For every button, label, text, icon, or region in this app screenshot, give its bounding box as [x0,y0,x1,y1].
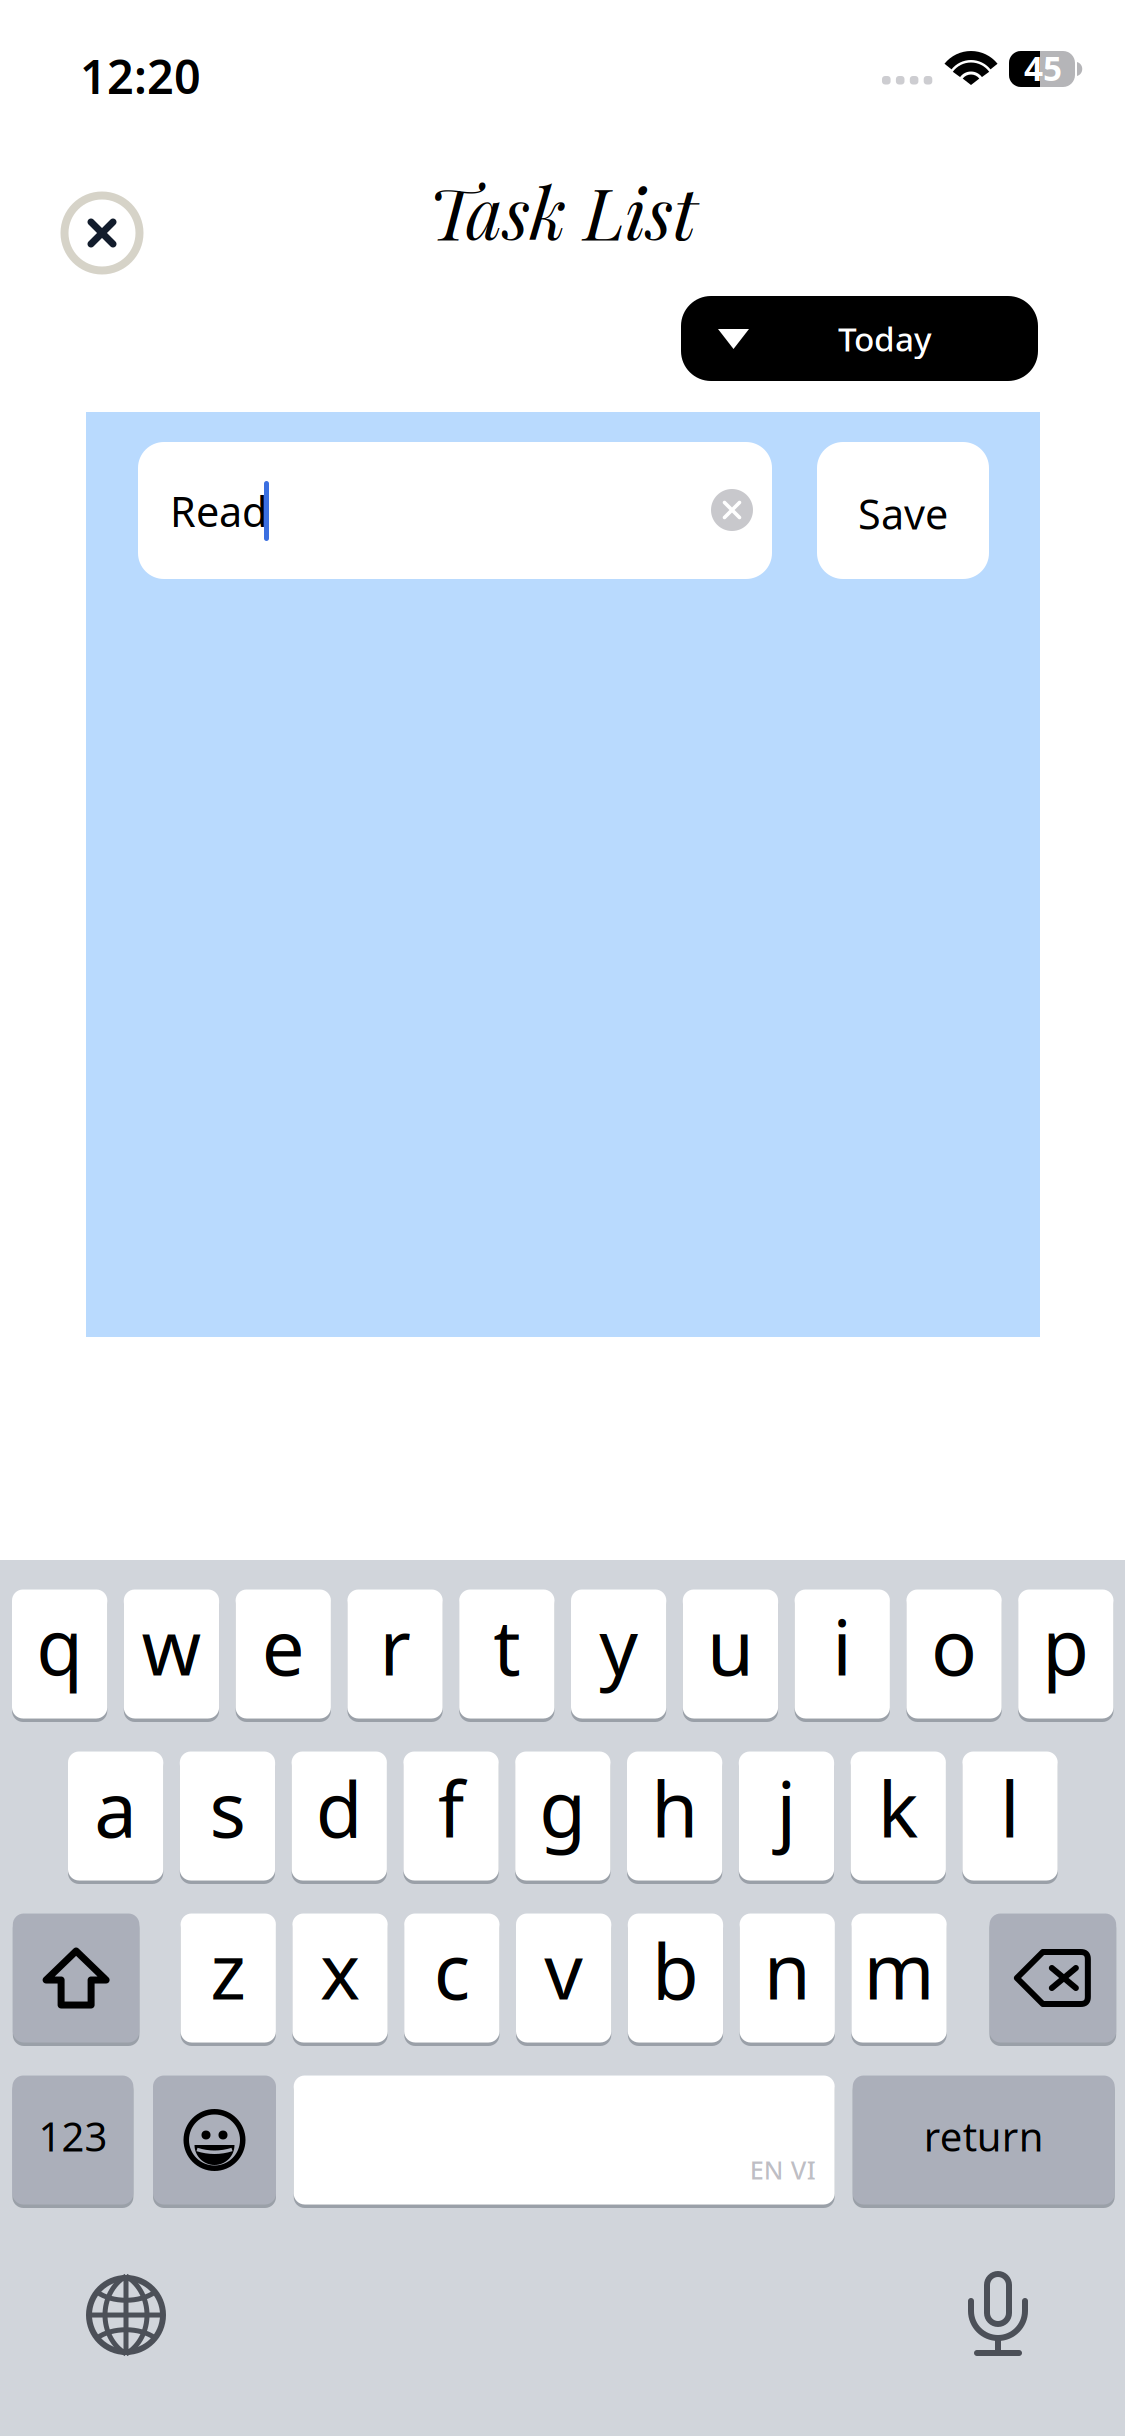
staticText: q [36,1595,83,1696]
button[interactable]: q [12,1586,107,1722]
staticText: z [210,1919,246,2020]
button[interactable]: Space [294,2072,835,2208]
staticText: v [544,1919,583,2020]
staticText: o [931,1595,977,1696]
button[interactable]: e [236,1586,331,1722]
staticText: m [863,1919,934,2020]
button[interactable]: j [739,1748,834,1884]
button[interactable]: k [851,1748,946,1884]
staticText: 12:20 [80,45,201,107]
staticText: p [1042,1595,1089,1696]
staticText: l [1000,1757,1020,1858]
staticText: return [924,2109,1044,2162]
button[interactable]: s [180,1748,275,1884]
staticText: x [320,1919,360,2020]
staticText: Read [170,484,267,538]
staticText: s [209,1757,245,1858]
button[interactable]: g [515,1748,610,1884]
button[interactable]: f [403,1748,499,1884]
button[interactable]: Clear text [701,479,763,541]
button[interactable]: w [124,1586,219,1722]
staticText: 123 [38,2109,107,2162]
staticText: Task List [428,164,697,258]
button[interactable]: Emoji [153,2072,276,2208]
button[interactable]: c [404,1910,499,2046]
staticText: r [379,1595,410,1696]
staticText: c [434,1919,470,2020]
button[interactable]: p [1018,1586,1113,1722]
button[interactable]: m [851,1910,947,2046]
staticText: h [651,1757,698,1858]
button[interactable]: v [516,1910,611,2046]
staticText: g [539,1757,586,1858]
staticText: n [764,1919,811,2020]
button[interactable]: i [795,1586,890,1722]
button[interactable]: l [962,1748,1058,1884]
staticText: Today [838,316,932,361]
button[interactable]: Dictate [971,2271,1025,2356]
button[interactable]: u [683,1586,778,1722]
button[interactable]: Close [52,183,152,283]
button[interactable]: y [571,1586,666,1722]
button[interactable]: b [628,1910,723,2046]
button[interactable]: a [68,1748,163,1884]
button[interactable]: z [181,1910,276,2046]
staticText: d [316,1757,363,1858]
button[interactable]: o [906,1586,1002,1722]
button[interactable]: r [347,1586,443,1722]
button[interactable]: d [292,1748,387,1884]
button[interactable]: Today [681,296,1038,381]
staticText: Save [858,486,948,541]
button[interactable]: n [740,1910,835,2046]
button[interactable]: x [292,1910,388,2046]
staticText: EN VI [750,2153,816,2186]
button[interactable]: Delete [989,1910,1116,2046]
staticText: u [707,1595,754,1696]
staticText: w [141,1595,201,1696]
staticText: i [832,1595,852,1696]
staticText: 45 [1024,46,1062,90]
button[interactable]: 123 [12,2072,133,2208]
staticText: k [878,1757,919,1858]
staticText: b [652,1919,699,2020]
button[interactable]: h [627,1748,722,1884]
staticText: f [438,1757,464,1858]
button[interactable]: Switch keyboard [86,2275,166,2355]
button[interactable]: return [853,2072,1115,2208]
button[interactable]: Save [817,442,989,579]
button[interactable]: t [459,1586,554,1722]
staticText: j [776,1757,796,1858]
staticText: y [599,1595,638,1696]
staticText: a [94,1757,137,1858]
staticText: t [493,1595,520,1696]
staticText: e [262,1595,305,1696]
button[interactable]: Shift [13,1910,139,2046]
